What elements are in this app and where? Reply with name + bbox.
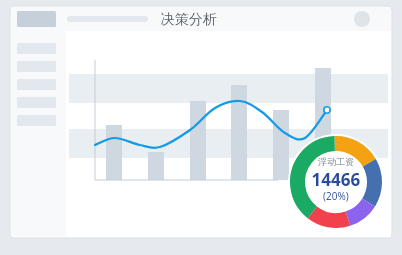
button[interactable]: Profile	[354, 11, 370, 27]
button[interactable]: 浮动工资 14466 (20%)	[290, 136, 382, 228]
